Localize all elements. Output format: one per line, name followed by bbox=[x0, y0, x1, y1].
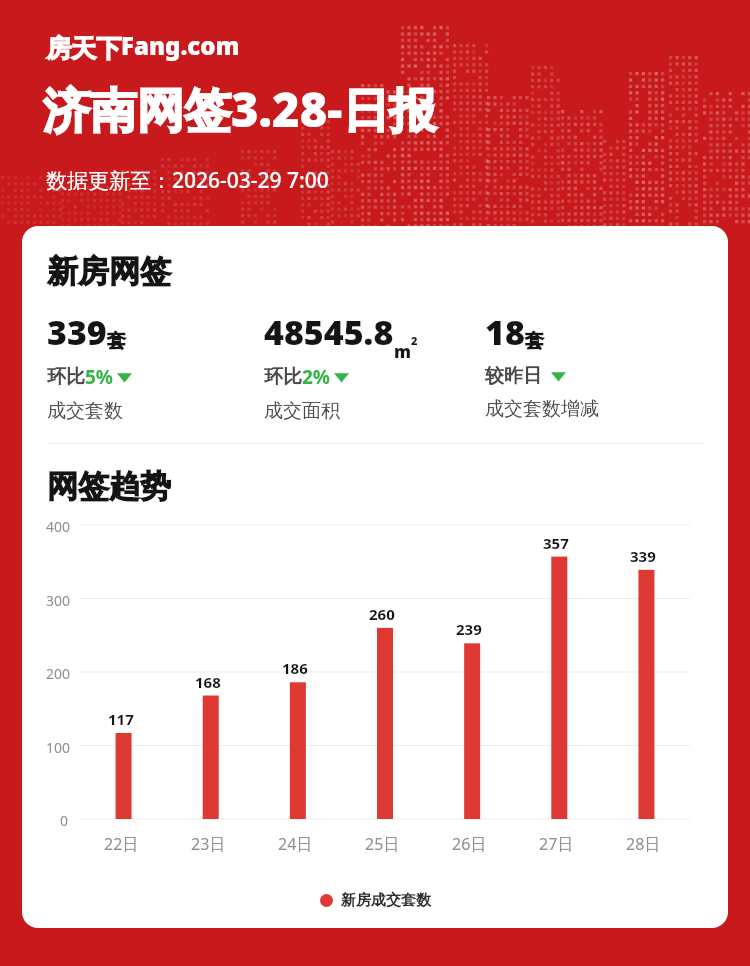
staticText: 数据更新至：2026-03-29 7:00 bbox=[46, 166, 329, 195]
staticText: 环比 bbox=[264, 365, 302, 389]
staticText: 套 bbox=[525, 329, 544, 353]
staticText: 100 bbox=[46, 738, 71, 757]
button[interactable]: 18 bbox=[485, 309, 599, 421]
staticText: 260 bbox=[369, 604, 395, 624]
staticText: 24日 bbox=[278, 833, 313, 855]
staticText: 2% bbox=[302, 364, 331, 390]
staticText: 套 bbox=[107, 329, 126, 353]
staticText: 网签趋势 bbox=[47, 467, 171, 506]
staticText: 28日 bbox=[626, 833, 661, 855]
button[interactable]: 48545.8 bbox=[264, 309, 418, 423]
staticText: 较昨日 bbox=[485, 364, 542, 388]
staticText: 成交套数增减 bbox=[485, 397, 599, 421]
staticText: 117 bbox=[108, 709, 134, 729]
staticText: 22日 bbox=[104, 833, 139, 855]
staticText: 环比 bbox=[47, 365, 85, 389]
button[interactable]: 房天下 Fang.com logo bbox=[46, 31, 240, 64]
staticText: 济南网签3.28-日报 bbox=[43, 77, 437, 141]
staticText: 23日 bbox=[191, 833, 226, 855]
staticText: 186 bbox=[282, 658, 308, 678]
staticText: 0 bbox=[60, 811, 69, 830]
staticText: 48545.8 bbox=[264, 309, 394, 355]
staticText: 239 bbox=[456, 619, 482, 639]
staticText: 168 bbox=[195, 672, 221, 692]
staticText: 成交面积 bbox=[264, 399, 340, 423]
staticText: 339 bbox=[630, 546, 656, 566]
staticText: 200 bbox=[46, 664, 71, 683]
staticText: 27日 bbox=[539, 833, 574, 855]
button[interactable]: 339 bbox=[47, 309, 132, 423]
staticText: 25日 bbox=[365, 833, 400, 855]
staticText: Fang.com bbox=[121, 29, 240, 62]
staticText: 房天下 bbox=[46, 33, 121, 64]
staticText: 400 bbox=[46, 517, 71, 536]
staticText: 300 bbox=[46, 591, 71, 610]
staticText: 成交套数 bbox=[47, 399, 123, 423]
staticText: 5% bbox=[85, 364, 114, 390]
staticText: 18 bbox=[485, 309, 525, 355]
staticText: 26日 bbox=[452, 833, 487, 855]
staticText: 新房成交套数 bbox=[341, 891, 431, 910]
staticText: 2 bbox=[411, 333, 418, 348]
staticText: 新房网签 bbox=[47, 252, 171, 291]
staticText: 357 bbox=[543, 533, 569, 553]
staticText: m bbox=[394, 340, 411, 363]
staticText: 339 bbox=[47, 309, 107, 355]
button[interactable]: 新房成交套数 bbox=[22, 891, 728, 910]
